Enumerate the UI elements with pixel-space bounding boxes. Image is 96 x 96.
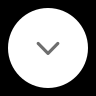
button[interactable]: Scroll down bbox=[8, 8, 88, 88]
